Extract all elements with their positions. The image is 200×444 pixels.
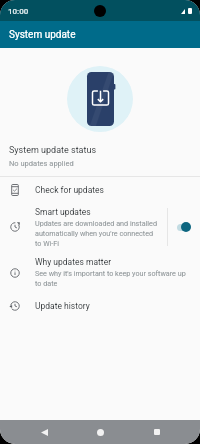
staticText: See why it's important to keep your soft… bbox=[35, 269, 191, 288]
button[interactable]: Recent apps bbox=[146, 420, 167, 444]
staticText: System update bbox=[9, 29, 76, 41]
staticText: No updates applied bbox=[9, 159, 74, 168]
staticText: Why updates matter bbox=[35, 257, 112, 267]
button[interactable]: Smart updates bbox=[0, 202, 167, 252]
staticText: 10:00 bbox=[8, 7, 29, 16]
button[interactable]: Smart updates toggle bbox=[168, 202, 200, 252]
staticText: Update history bbox=[35, 301, 90, 311]
button[interactable]: Check for updates bbox=[0, 177, 200, 202]
staticText: Check for updates bbox=[35, 185, 104, 195]
button[interactable]: Home bbox=[90, 420, 111, 444]
staticText: System update status bbox=[9, 145, 97, 156]
button[interactable]: Back bbox=[34, 420, 55, 444]
staticText: Smart updates bbox=[35, 207, 91, 217]
button[interactable]: Update history bbox=[0, 293, 200, 319]
staticText: Updates are downloaded and installed aut… bbox=[35, 219, 161, 248]
button[interactable]: Why updates matter bbox=[0, 252, 200, 293]
